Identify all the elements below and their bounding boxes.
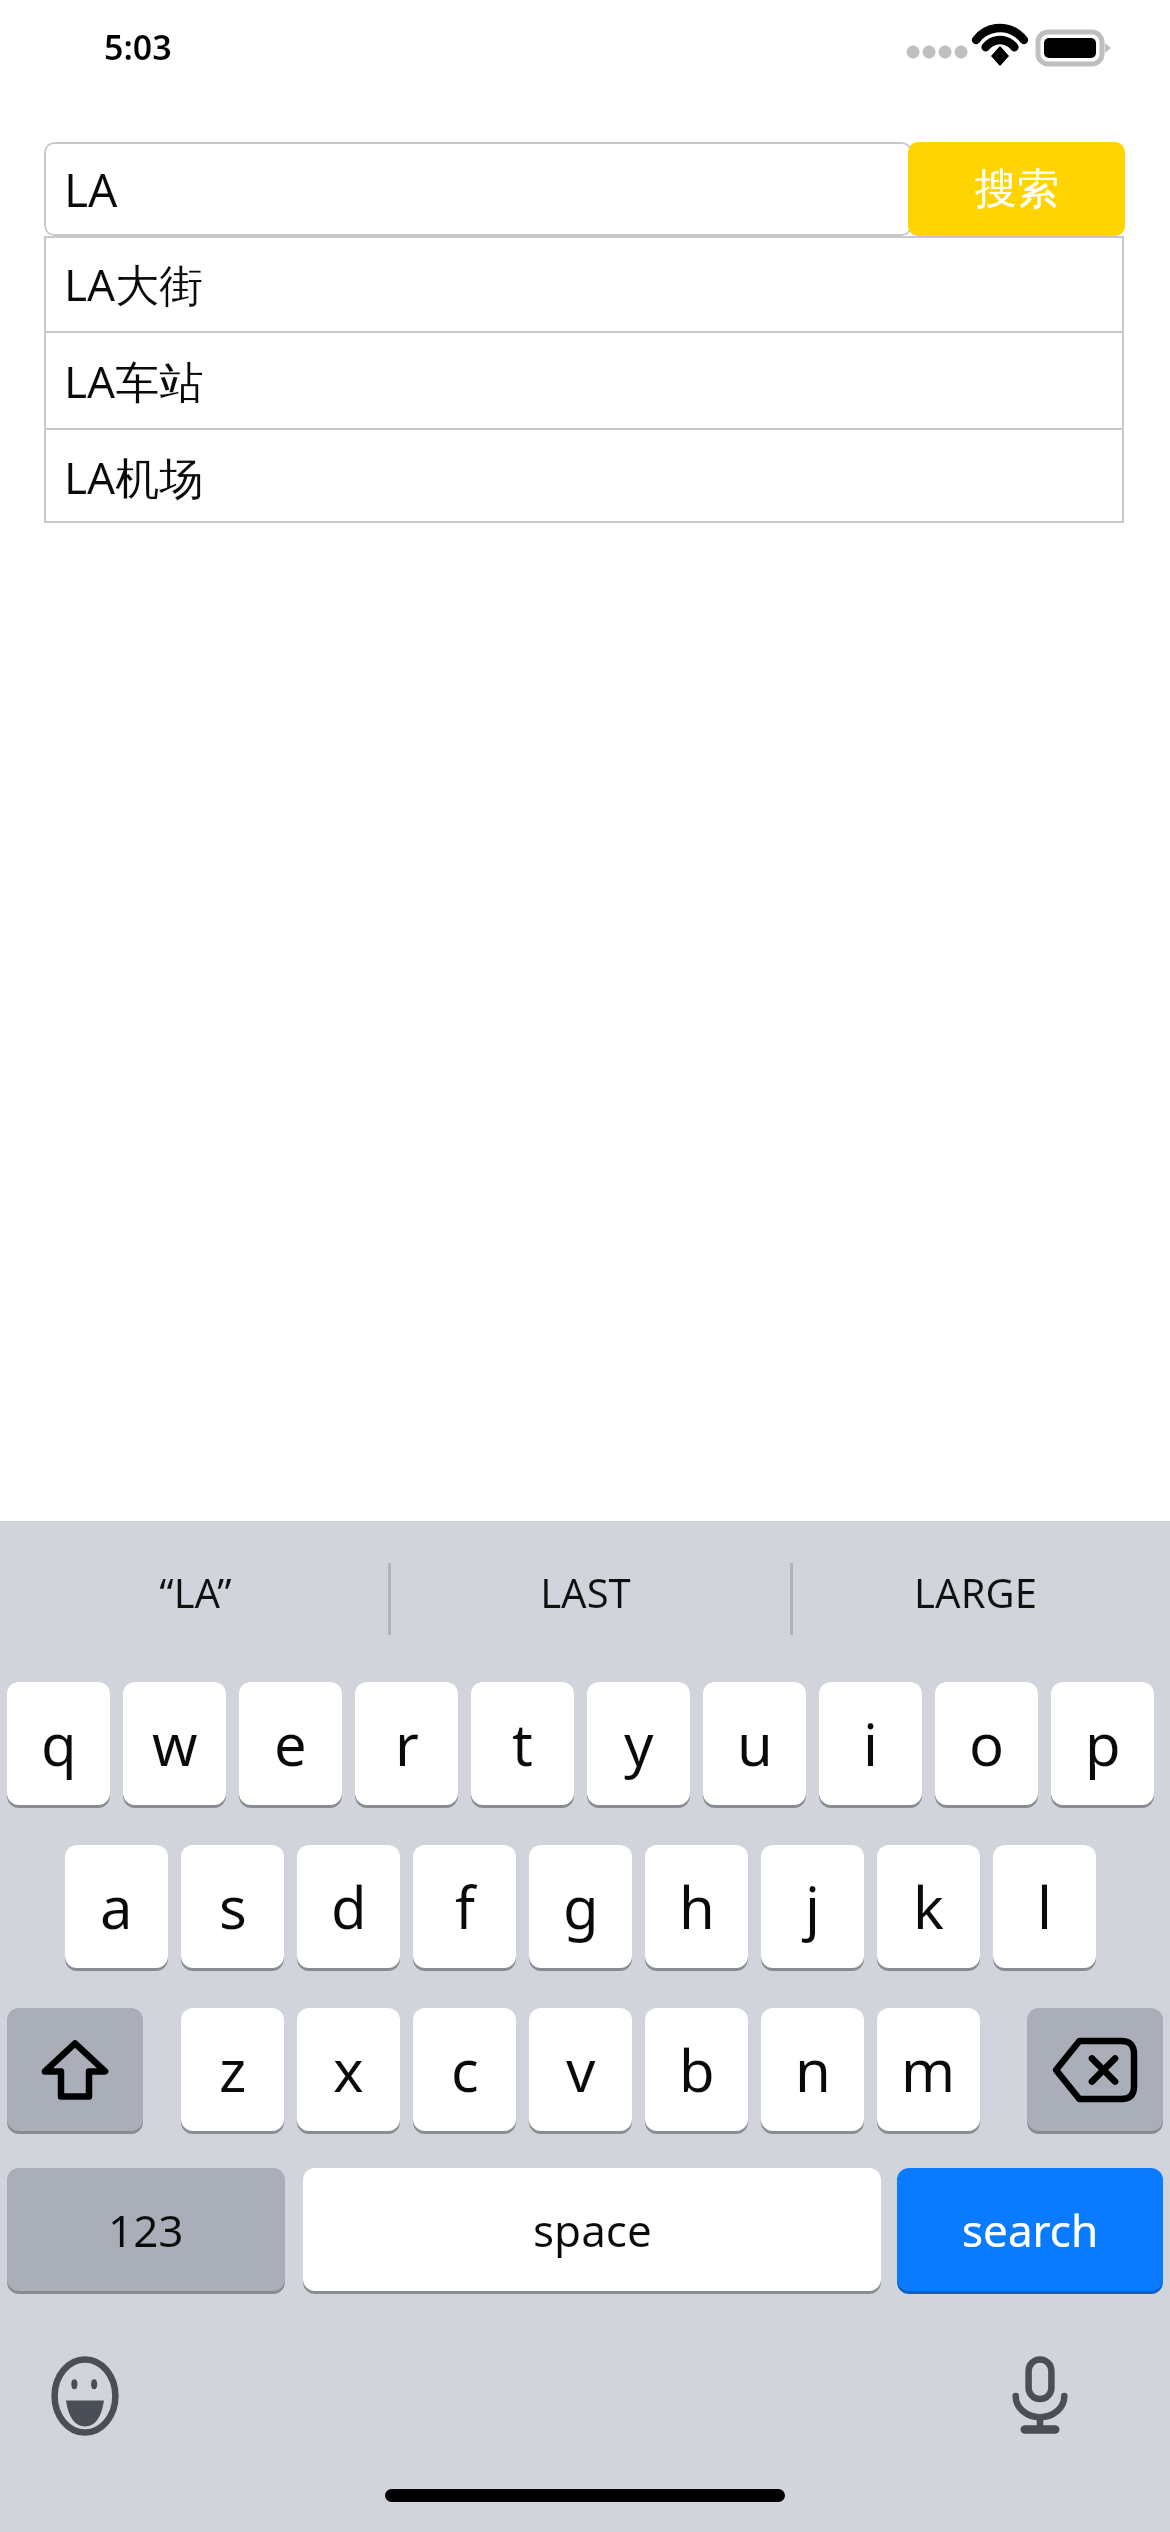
staticText: “LA” bbox=[159, 1565, 232, 1619]
staticText: r bbox=[395, 1704, 419, 1783]
button[interactable]: u bbox=[703, 1682, 806, 1805]
button[interactable]: LA机场 bbox=[44, 430, 1124, 523]
button[interactable]: “LA” bbox=[0, 1521, 390, 1663]
button[interactable]: l bbox=[993, 1845, 1096, 1968]
button[interactable]: e bbox=[239, 1682, 342, 1805]
button[interactable]: t bbox=[471, 1682, 574, 1805]
staticText: q bbox=[41, 1704, 77, 1783]
button[interactable]: j bbox=[761, 1845, 864, 1968]
button[interactable]: Backspace bbox=[1027, 2008, 1163, 2131]
staticText: w bbox=[152, 1704, 198, 1783]
staticText: v bbox=[566, 2030, 596, 2109]
button[interactable]: n bbox=[761, 2008, 864, 2131]
button[interactable]: p bbox=[1051, 1682, 1154, 1805]
staticText: u bbox=[737, 1704, 773, 1783]
staticText: x bbox=[333, 2030, 364, 2109]
staticText: LA大街 bbox=[64, 254, 204, 314]
staticText: g bbox=[563, 1867, 599, 1946]
staticText: d bbox=[331, 1867, 367, 1946]
button[interactable]: x bbox=[297, 2008, 400, 2131]
button[interactable]: v bbox=[529, 2008, 632, 2131]
button[interactable]: 搜索 bbox=[908, 142, 1125, 236]
button[interactable]: search bbox=[897, 2168, 1163, 2291]
staticText: j bbox=[805, 1867, 820, 1946]
staticText: m bbox=[901, 2030, 956, 2109]
button[interactable]: h bbox=[645, 1845, 748, 1968]
staticText: s bbox=[219, 1867, 247, 1946]
staticText: space bbox=[533, 2200, 652, 2260]
staticText: t bbox=[512, 1704, 533, 1783]
button[interactable]: Dictation bbox=[985, 2341, 1095, 2451]
staticText: n bbox=[795, 2030, 831, 2109]
button[interactable]: f bbox=[413, 1845, 516, 1968]
staticText: k bbox=[913, 1867, 944, 1946]
staticText: LA车站 bbox=[64, 351, 204, 411]
staticText: y bbox=[624, 1704, 654, 1783]
button[interactable]: s bbox=[181, 1845, 284, 1968]
staticText: p bbox=[1085, 1704, 1121, 1783]
button[interactable]: k bbox=[877, 1845, 980, 1968]
button[interactable]: LAST bbox=[390, 1521, 780, 1663]
button[interactable]: w bbox=[123, 1682, 226, 1805]
staticText: 5:03 bbox=[104, 24, 172, 70]
button[interactable]: d bbox=[297, 1845, 400, 1968]
button[interactable]: LA车站 bbox=[44, 333, 1124, 428]
button[interactable]: r bbox=[355, 1682, 458, 1805]
staticText: h bbox=[679, 1867, 715, 1946]
staticText: f bbox=[455, 1867, 475, 1946]
button[interactable]: i bbox=[819, 1682, 922, 1805]
staticText: o bbox=[969, 1704, 1005, 1783]
staticText: LARGE bbox=[914, 1565, 1037, 1619]
button[interactable]: LA bbox=[44, 142, 912, 236]
staticText: a bbox=[100, 1867, 133, 1946]
button[interactable]: g bbox=[529, 1845, 632, 1968]
button[interactable]: LARGE bbox=[780, 1521, 1170, 1663]
staticText: LAST bbox=[540, 1565, 631, 1619]
button[interactable]: b bbox=[645, 2008, 748, 2131]
button[interactable]: LA大街 bbox=[44, 236, 1124, 331]
staticText: 123 bbox=[108, 2200, 184, 2260]
button[interactable]: z bbox=[181, 2008, 284, 2131]
button[interactable]: c bbox=[413, 2008, 516, 2131]
button[interactable]: a bbox=[65, 1845, 168, 1968]
staticText: b bbox=[679, 2030, 715, 2109]
button[interactable]: Shift bbox=[7, 2008, 143, 2131]
staticText: i bbox=[863, 1704, 878, 1783]
button[interactable]: 123 bbox=[7, 2168, 285, 2291]
staticText: e bbox=[274, 1704, 307, 1783]
staticText: LA机场 bbox=[64, 447, 204, 507]
staticText: c bbox=[451, 2030, 479, 2109]
button[interactable]: o bbox=[935, 1682, 1038, 1805]
staticText: z bbox=[219, 2030, 247, 2109]
staticText: search bbox=[962, 2200, 1099, 2260]
button[interactable]: Emoji keyboard bbox=[30, 2341, 140, 2451]
staticText: l bbox=[1037, 1867, 1052, 1946]
button[interactable]: space bbox=[303, 2168, 881, 2291]
staticText: 搜索 bbox=[975, 163, 1059, 216]
staticText: LA bbox=[64, 158, 118, 221]
button[interactable]: y bbox=[587, 1682, 690, 1805]
button[interactable]: q bbox=[7, 1682, 110, 1805]
button[interactable]: m bbox=[877, 2008, 980, 2131]
